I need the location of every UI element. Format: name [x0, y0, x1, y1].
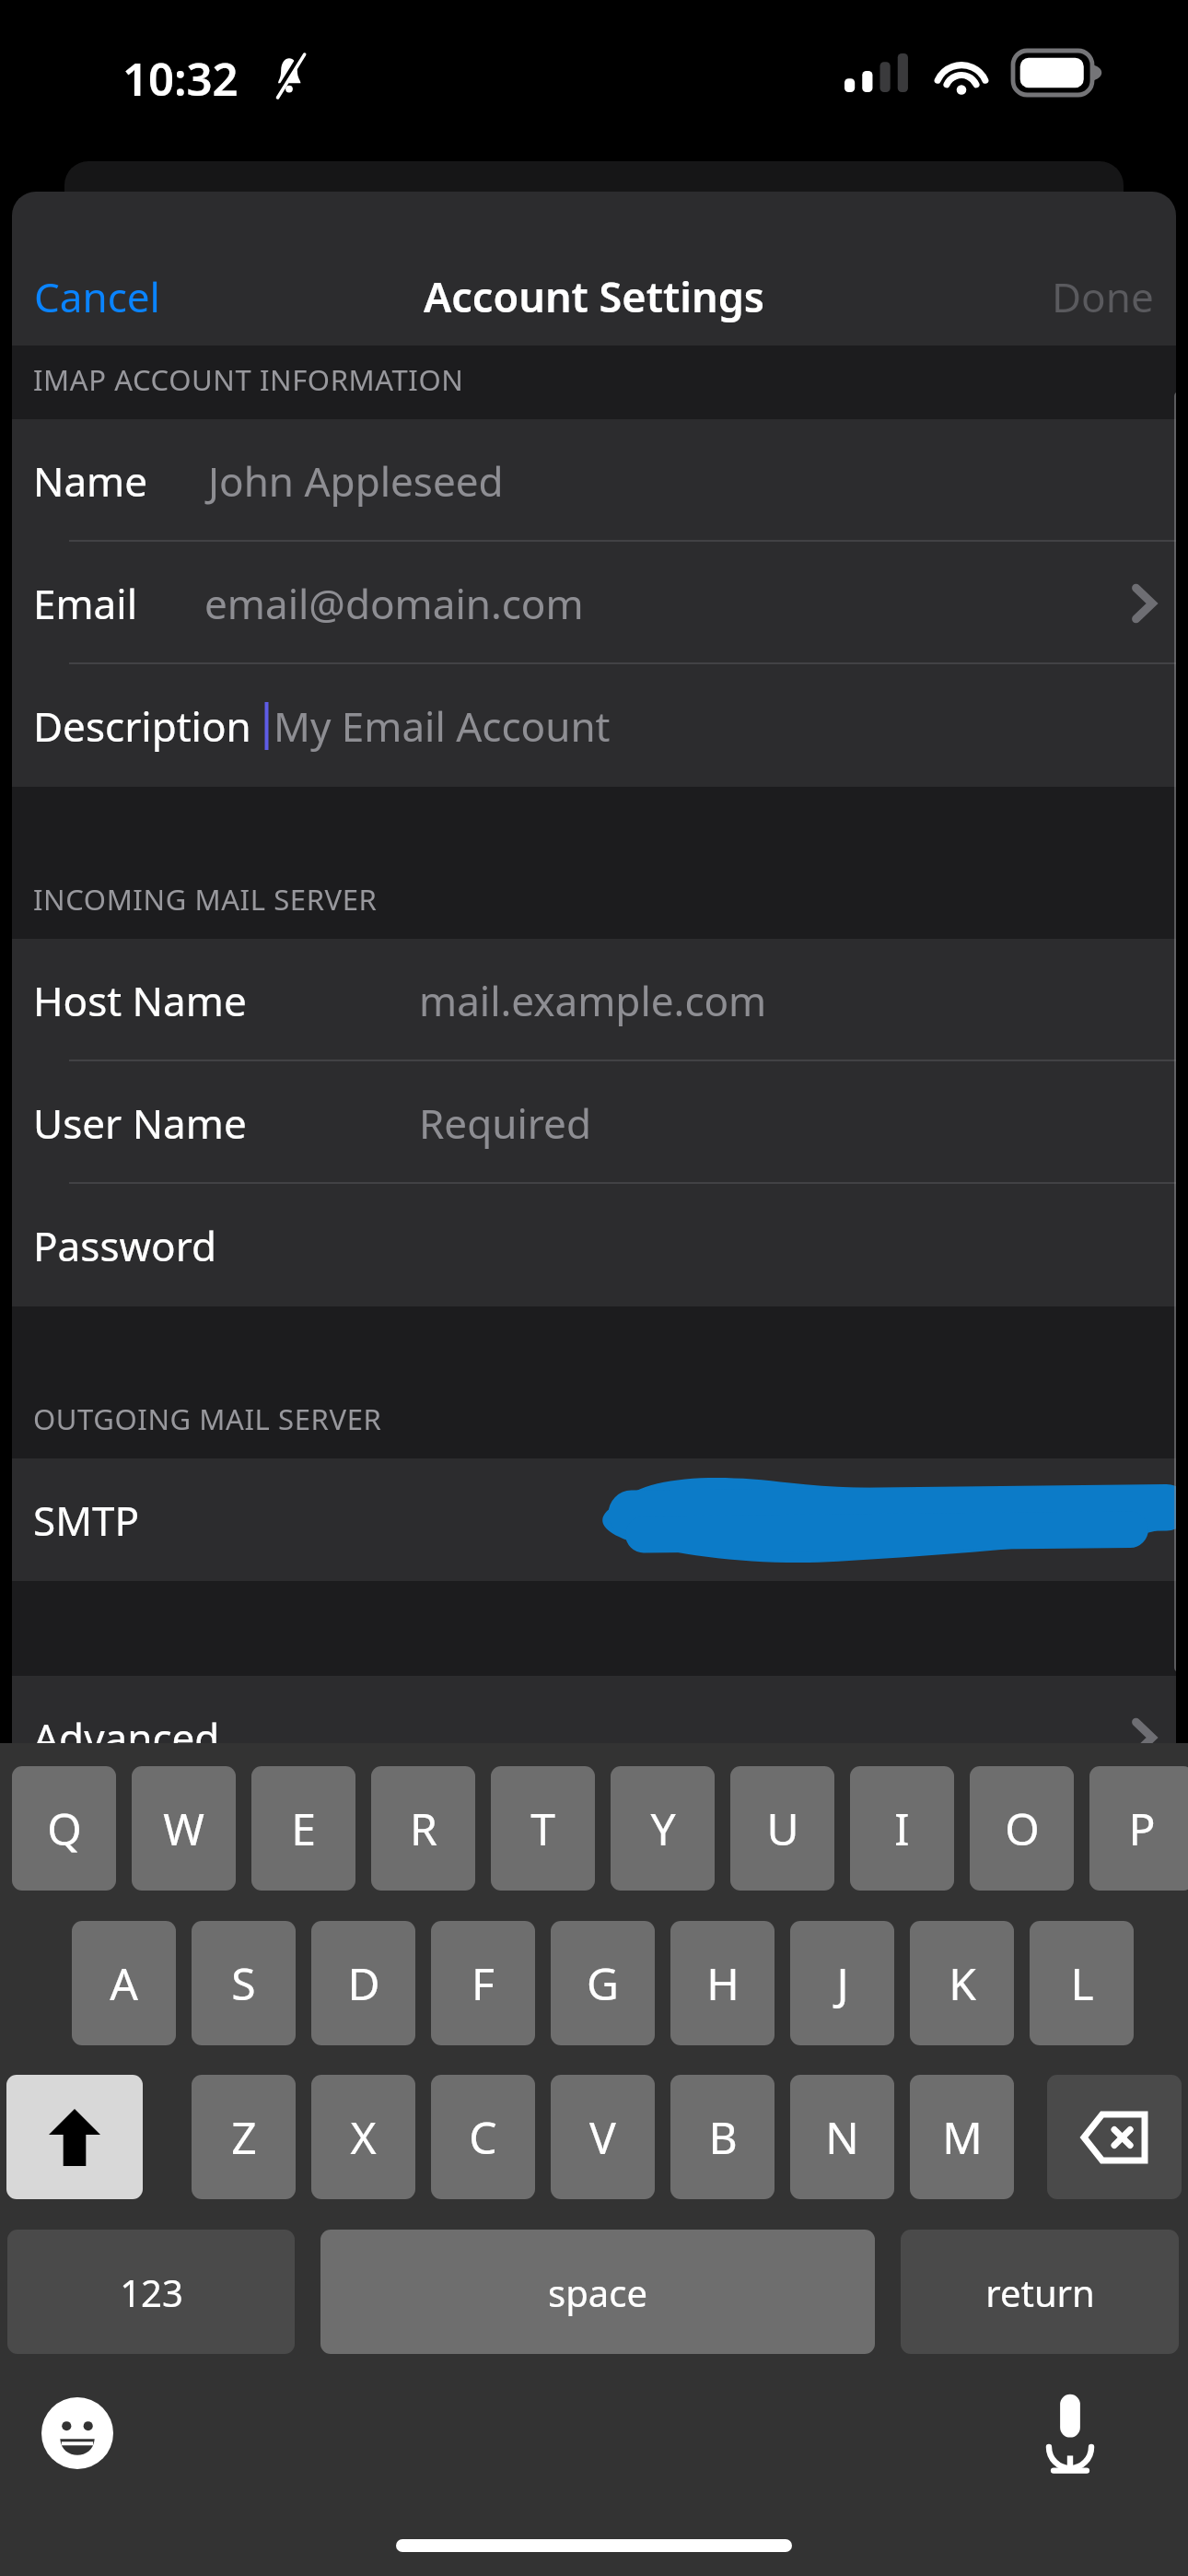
button[interactable]: W [132, 1766, 236, 1891]
button[interactable]: M [910, 2075, 1014, 2199]
button[interactable]: P [1089, 1766, 1188, 1891]
button[interactable]: E [251, 1766, 355, 1891]
button[interactable]: SMTP [12, 1458, 1176, 1581]
button[interactable]: O [970, 1766, 1074, 1891]
staticText: L [1070, 1953, 1094, 2013]
button[interactable]: B [670, 2075, 775, 2199]
staticText: T [530, 1798, 555, 1858]
staticText: Name [33, 453, 148, 509]
button[interactable]: J [790, 1921, 894, 2045]
staticText: W [163, 1798, 204, 1858]
button[interactable]: Shift [6, 2075, 143, 2199]
staticText: space [548, 2267, 647, 2317]
button[interactable]: Description [12, 664, 1176, 787]
button[interactable]: User Name [12, 1061, 1176, 1184]
button[interactable]: Y [611, 1766, 715, 1891]
button[interactable]: Z [192, 2075, 296, 2199]
staticText: Description [33, 698, 251, 754]
button[interactable]: space [320, 2230, 875, 2354]
staticText: K [949, 1953, 976, 2013]
staticText: J [836, 1953, 849, 2013]
button[interactable]: Name [12, 419, 1176, 542]
staticText: H [706, 1953, 740, 2013]
button[interactable]: Cancel [12, 256, 182, 337]
staticText: C [469, 2107, 497, 2167]
staticText: E [291, 1798, 316, 1858]
staticText: mail.example.com [419, 973, 767, 1028]
button[interactable]: Advanced [12, 1676, 1176, 1798]
staticText: B [708, 2107, 738, 2167]
staticText: A [110, 1953, 138, 2013]
button[interactable]: U [730, 1766, 834, 1891]
staticText: 10:32 [122, 48, 239, 110]
staticText: F [472, 1953, 495, 2013]
staticText: D [347, 1953, 380, 2013]
button[interactable]: X [311, 2075, 415, 2199]
staticText: Email [33, 576, 137, 631]
staticText: S [231, 1953, 256, 2013]
staticText: SMTP [33, 1493, 140, 1548]
button[interactable]: 123 [7, 2230, 295, 2354]
button[interactable]: R [371, 1766, 475, 1891]
button[interactable]: K [910, 1921, 1014, 2045]
button[interactable]: Host Name [12, 939, 1176, 1061]
button[interactable]: H [670, 1921, 775, 2045]
button[interactable]: L [1030, 1921, 1134, 2045]
staticText: O [1005, 1798, 1040, 1858]
staticText: Required [419, 1095, 591, 1151]
button[interactable]: Q [12, 1766, 116, 1891]
staticText: John Appleseed [208, 453, 504, 509]
staticText: M [942, 2107, 983, 2167]
staticText: Z [231, 2107, 257, 2167]
button[interactable]: Backspace [1047, 2075, 1182, 2199]
staticText: IMAP ACCOUNT INFORMATION [33, 360, 464, 399]
staticText: I [894, 1798, 910, 1858]
staticText: U [766, 1798, 799, 1858]
staticText: X [350, 2107, 377, 2167]
staticText: My Email Account [274, 698, 611, 754]
button[interactable]: G [551, 1921, 655, 2045]
staticText: Cancel [34, 269, 160, 324]
staticText: return [985, 2267, 1095, 2317]
staticText: User Name [33, 1095, 247, 1151]
button[interactable]: F [431, 1921, 535, 2045]
button[interactable]: Done [1030, 256, 1176, 337]
button[interactable]: A [72, 1921, 176, 2045]
staticText: Q [47, 1798, 82, 1858]
staticText: INCOMING MAIL SERVER [33, 880, 378, 919]
button[interactable]: Dictation [1041, 2393, 1100, 2476]
button[interactable]: I [850, 1766, 954, 1891]
staticText: email@domain.com [204, 576, 584, 631]
staticText: OUTGOING MAIL SERVER [33, 1399, 382, 1438]
button[interactable]: Email [12, 542, 1176, 664]
staticText: 123 [120, 2267, 183, 2317]
staticText: P [1128, 1798, 1156, 1858]
staticText: V [589, 2107, 616, 2167]
button[interactable]: D [311, 1921, 415, 2045]
staticText: Y [650, 1798, 676, 1858]
button[interactable]: V [551, 2075, 655, 2199]
button[interactable]: N [790, 2075, 894, 2199]
staticText: N [825, 2107, 859, 2167]
staticText: Advanced [33, 1710, 220, 1765]
button[interactable]: Emoji keyboard [41, 2397, 113, 2469]
staticText: R [410, 1798, 437, 1858]
button[interactable]: S [192, 1921, 296, 2045]
button[interactable]: C [431, 2075, 535, 2199]
button[interactable]: Password [12, 1184, 1176, 1306]
staticText: Account Settings [424, 268, 764, 324]
button[interactable]: return [901, 2230, 1179, 2354]
staticText: Host Name [33, 973, 247, 1028]
staticText: Password [33, 1218, 217, 1273]
staticText: G [587, 1953, 619, 2013]
button[interactable]: T [491, 1766, 595, 1891]
staticText: Done [1052, 269, 1154, 324]
